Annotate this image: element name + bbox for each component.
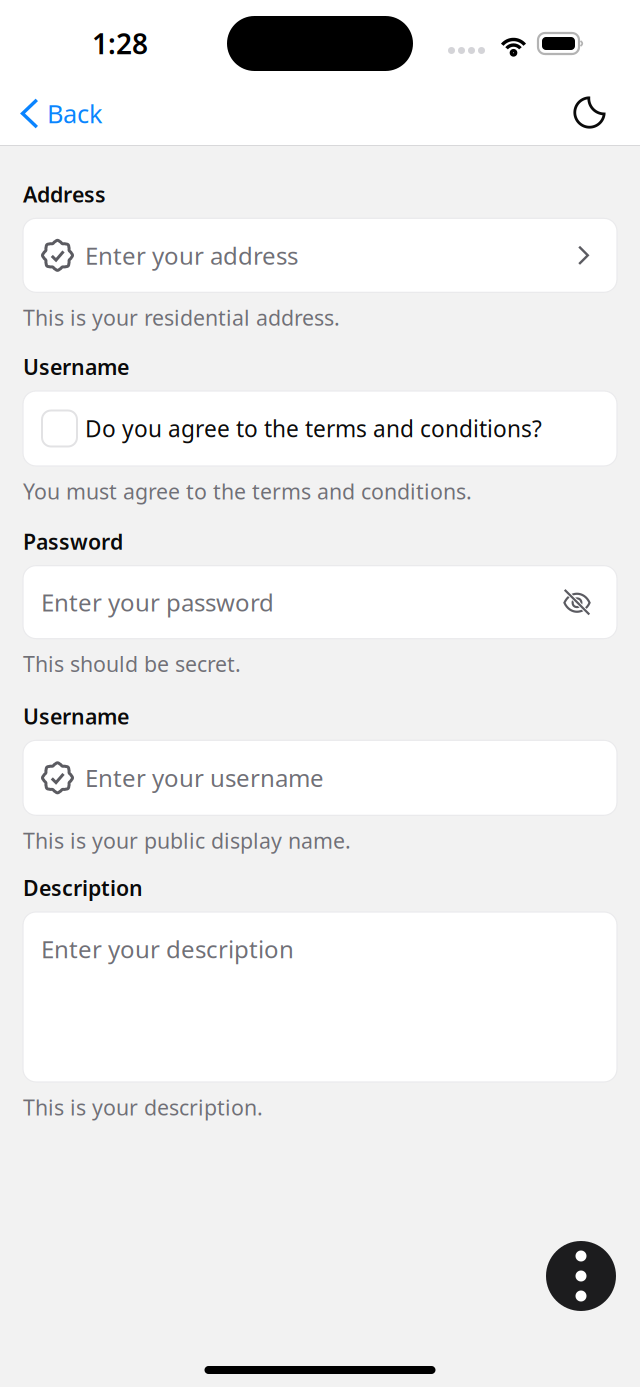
staticText: Enter your password (41, 586, 274, 618)
staticText: Enter your username (85, 762, 324, 794)
staticText: This is your public display name. (23, 826, 351, 855)
staticText: This should be secret. (23, 650, 241, 678)
button[interactable]: Back (0, 91, 103, 141)
button[interactable]: Enter your address (23, 218, 617, 292)
staticText: Password (23, 527, 123, 556)
button[interactable]: More options (546, 1241, 616, 1311)
staticText: Enter your address (85, 239, 298, 271)
staticText: Back (47, 97, 103, 130)
staticText: Enter your description (41, 933, 294, 965)
button[interactable]: Show password (562, 587, 617, 617)
staticText: 1:28 (92, 25, 148, 62)
staticText: You must agree to the terms and conditio… (23, 477, 472, 505)
button[interactable]: Do you agree to the terms and conditions… (23, 391, 617, 466)
staticText: Do you agree to the terms and conditions… (85, 413, 542, 443)
staticText: Username (23, 353, 129, 381)
staticText: Username (23, 702, 129, 730)
staticText: Description (23, 874, 143, 902)
button[interactable]: Appearance (572, 91, 640, 142)
staticText: This is your description. (23, 1093, 263, 1121)
staticText: Address (23, 180, 106, 208)
staticText: This is your residential address. (23, 303, 340, 332)
